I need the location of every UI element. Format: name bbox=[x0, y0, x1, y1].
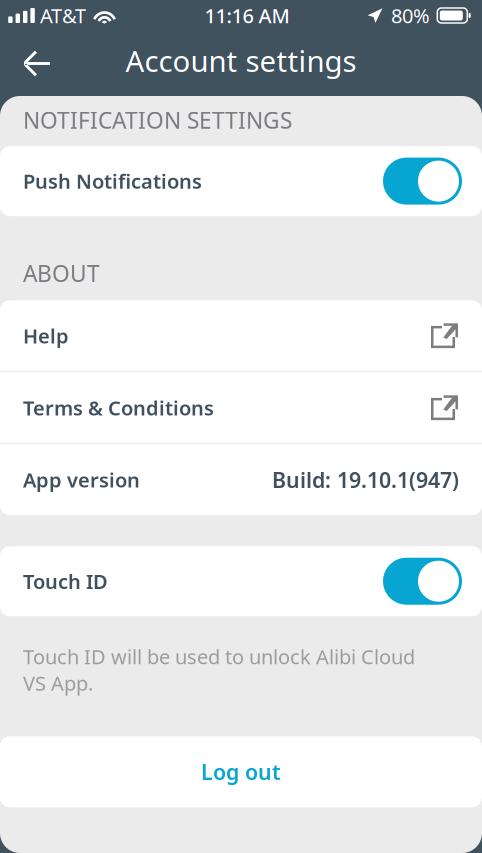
button[interactable]: Back bbox=[0, 31, 73, 96]
staticText: Build: 19.10.1(947) bbox=[272, 465, 459, 494]
staticText: Touch ID bbox=[23, 568, 108, 594]
button[interactable]: Help bbox=[0, 300, 482, 371]
staticText: Help bbox=[23, 322, 69, 349]
staticText: Log out bbox=[201, 758, 281, 786]
staticText: App version bbox=[23, 466, 140, 493]
staticText: AT&T bbox=[40, 2, 86, 29]
staticText: Push Notifications bbox=[23, 168, 202, 194]
staticText: NOTIFICATION SETTINGS bbox=[23, 105, 292, 135]
staticText: ABOUT bbox=[23, 258, 100, 288]
button[interactable]: Push Notifications bbox=[0, 146, 482, 216]
button[interactable]: Log out bbox=[0, 736, 482, 807]
staticText: 11:16 AM bbox=[204, 2, 289, 29]
staticText: Terms & Conditions bbox=[23, 394, 214, 421]
staticText: Touch ID will be used to unlock Alibi Cl… bbox=[23, 643, 415, 696]
staticText: Account settings bbox=[125, 41, 356, 80]
staticText: 80% bbox=[391, 2, 430, 29]
button[interactable]: Touch ID bbox=[0, 546, 482, 616]
button[interactable]: Terms & Conditions bbox=[0, 372, 482, 443]
